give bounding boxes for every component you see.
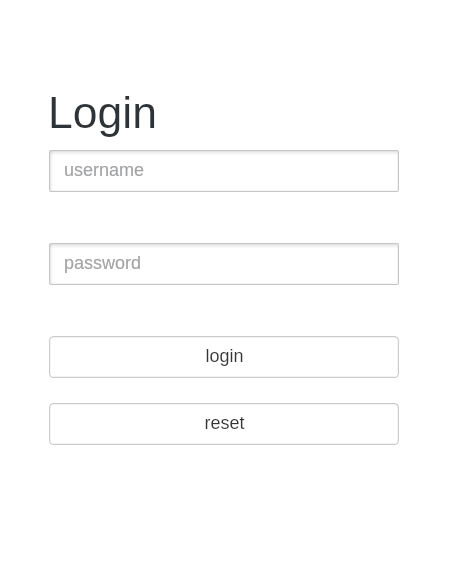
button[interactable]: username <box>49 150 399 192</box>
staticText: username <box>64 160 145 180</box>
button[interactable]: reset <box>49 403 399 445</box>
button[interactable]: login <box>49 336 399 378</box>
staticText: reset <box>204 413 245 433</box>
button[interactable]: password <box>49 243 399 285</box>
staticText: login <box>205 346 244 366</box>
staticText: Login <box>48 88 157 138</box>
staticText: password <box>64 253 142 273</box>
